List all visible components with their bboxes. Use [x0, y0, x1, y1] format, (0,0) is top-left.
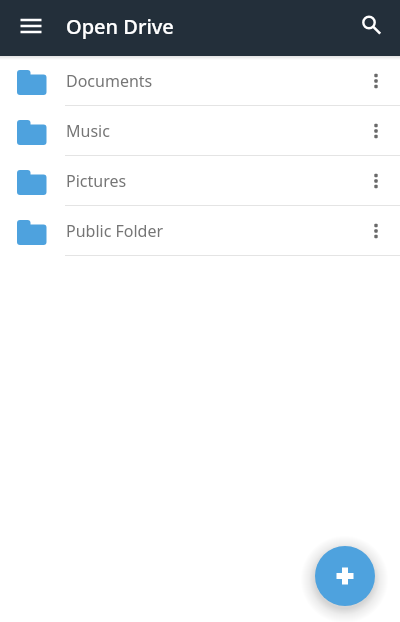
- button[interactable]: [364, 169, 388, 193]
- button[interactable]: Documents: [0, 56, 400, 106]
- button[interactable]: Public Folder: [0, 206, 400, 256]
- button[interactable]: Music: [0, 106, 400, 156]
- button[interactable]: [364, 219, 388, 243]
- staticText: Pictures: [66, 170, 127, 192]
- staticText: Music: [66, 120, 110, 142]
- staticText: Open Drive: [66, 13, 174, 40]
- button[interactable]: [364, 119, 388, 143]
- button[interactable]: Pictures: [0, 156, 400, 206]
- button[interactable]: [364, 69, 388, 93]
- button[interactable]: [353, 11, 383, 41]
- staticText: Public Folder: [66, 220, 164, 242]
- button[interactable]: [9, 4, 53, 48]
- staticText: Documents: [66, 70, 153, 92]
- button[interactable]: [315, 546, 375, 606]
